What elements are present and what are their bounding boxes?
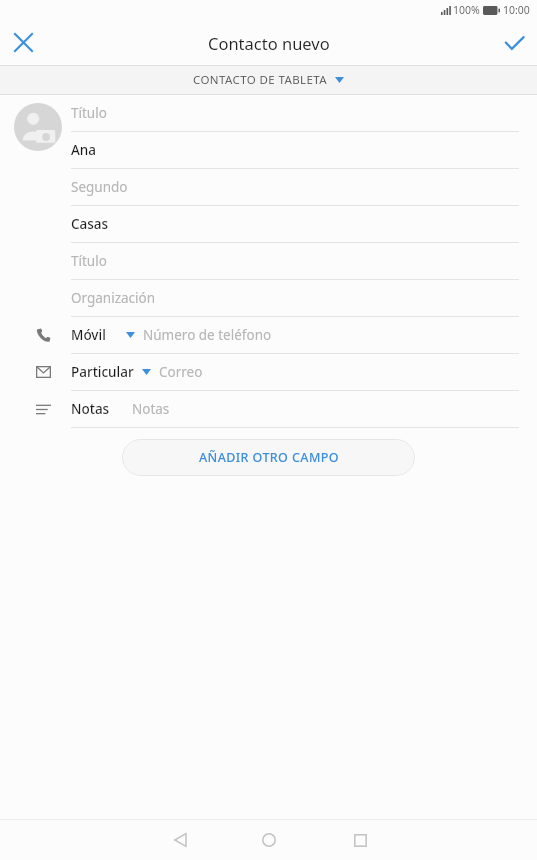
button[interactable]: AÑADIR OTRO CAMPO xyxy=(122,439,415,476)
staticText: Segundo xyxy=(71,178,128,196)
button[interactable]: Añadir foto xyxy=(14,103,62,151)
staticText: Notas xyxy=(132,400,170,418)
button[interactable]: CONTACTO DE TABLETA xyxy=(0,66,537,94)
button[interactable]: Cancelar xyxy=(0,20,46,65)
staticText: Título xyxy=(71,252,107,270)
staticText: 10:00 xyxy=(503,3,530,17)
staticText: Ana xyxy=(71,141,97,159)
button[interactable]: Teléfono xyxy=(0,317,537,354)
staticText: Móvil xyxy=(71,326,106,344)
staticText: Número de teléfono xyxy=(143,326,272,344)
staticText: Contacto nuevo xyxy=(208,32,330,54)
other: Notas xyxy=(36,404,51,415)
staticText: 100% xyxy=(453,3,480,17)
staticText: Particular xyxy=(71,363,134,381)
button[interactable]: Cambiar tipo xyxy=(126,332,135,338)
button[interactable]: Título xyxy=(0,243,537,280)
button[interactable]: Inicio xyxy=(247,820,291,860)
button[interactable]: Guardar xyxy=(491,20,537,65)
other: Correo xyxy=(36,366,51,378)
staticText: Casas xyxy=(71,215,109,233)
button[interactable]: Casas xyxy=(0,206,537,243)
button[interactable]: Cambiar tipo xyxy=(142,369,151,375)
staticText: AÑADIR OTRO CAMPO xyxy=(199,449,339,466)
other: Teléfono xyxy=(36,328,51,343)
button[interactable]: Recientes xyxy=(338,820,382,860)
button[interactable]: Correo xyxy=(0,354,537,391)
button[interactable]: Organización xyxy=(0,280,537,317)
button[interactable]: Título xyxy=(0,95,537,132)
button[interactable]: Segundo xyxy=(0,169,537,206)
button[interactable]: Atrás xyxy=(158,820,202,860)
staticText: Título xyxy=(71,104,107,122)
button[interactable]: Ana xyxy=(0,132,537,169)
staticText: CONTACTO DE TABLETA xyxy=(193,72,328,88)
staticText: Notas xyxy=(71,400,110,418)
staticText: Correo xyxy=(159,363,203,381)
staticText: Organización xyxy=(71,289,156,307)
button[interactable]: Notas xyxy=(0,391,537,428)
